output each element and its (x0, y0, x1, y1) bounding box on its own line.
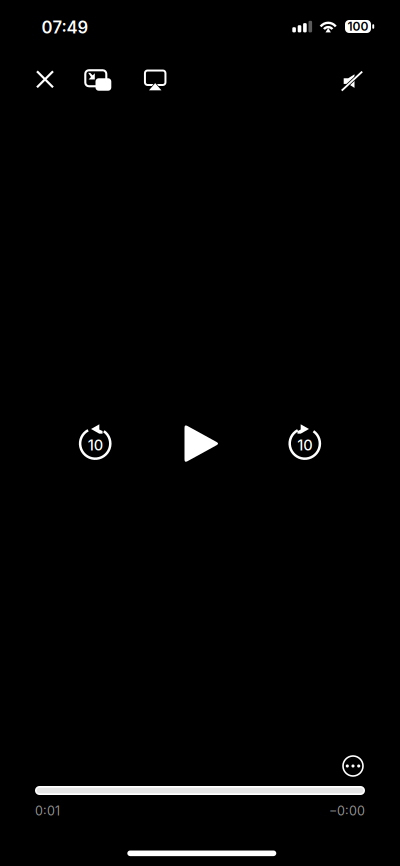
button[interactable]: Unmute (330, 59, 374, 103)
button[interactable]: Close (23, 57, 67, 101)
button[interactable]: Play (171, 413, 233, 475)
button[interactable]: AirPlay (133, 58, 177, 102)
button[interactable]: More options (336, 749, 370, 783)
staticText: 0:01 (35, 803, 60, 819)
staticText: 100 (347, 19, 368, 34)
staticText: −0:00 (329, 803, 365, 819)
staticText: 10 (88, 436, 103, 454)
staticText: 07:49 (41, 17, 88, 38)
button[interactable]: Skip back 10 seconds (64, 413, 126, 475)
button[interactable]: Skip forward 10 seconds (274, 413, 336, 475)
staticText: 10 (297, 436, 312, 454)
button[interactable]: Picture in Picture (76, 58, 120, 102)
